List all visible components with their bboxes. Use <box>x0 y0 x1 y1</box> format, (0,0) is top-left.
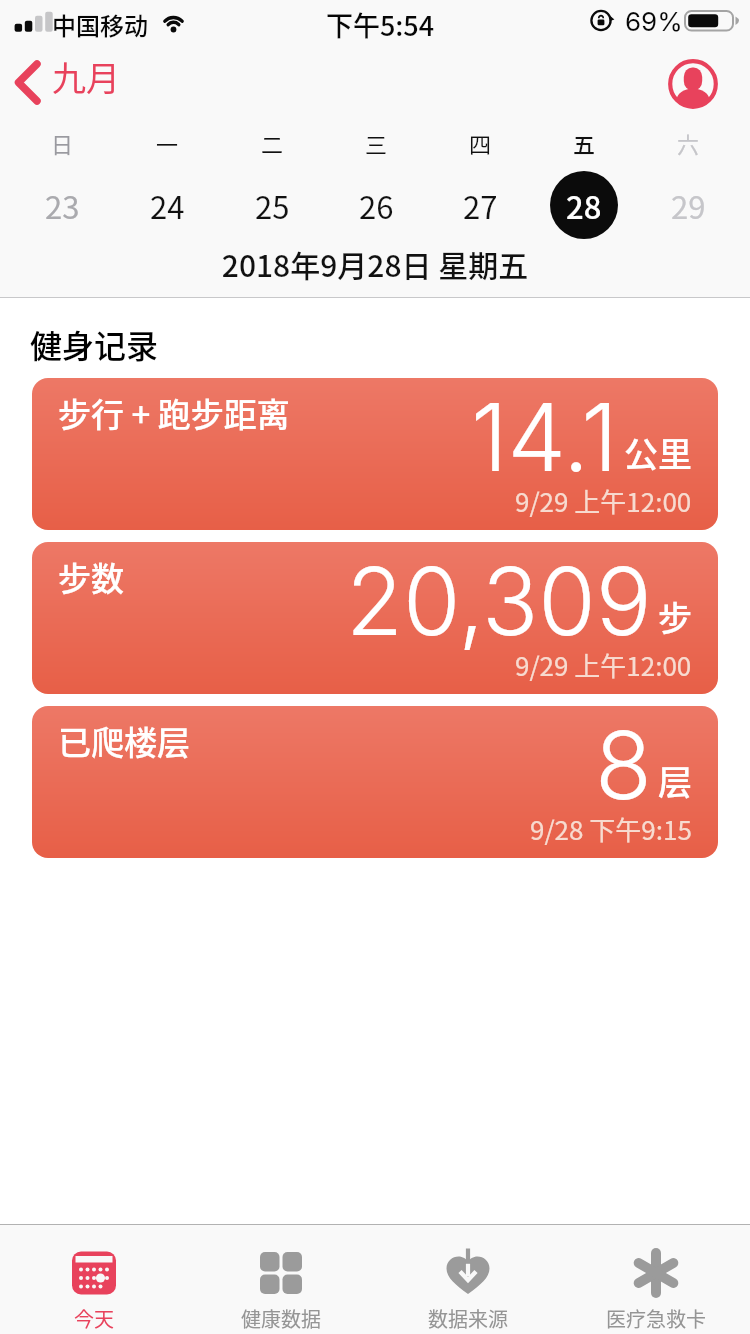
button[interactable]: 25 <box>220 171 324 239</box>
button[interactable] <box>668 59 718 109</box>
button[interactable]: 26 <box>324 171 428 239</box>
staticText: 25 <box>255 183 290 228</box>
button[interactable]: 步数 <box>32 542 718 694</box>
staticText: 9/28 下午9:15 <box>530 810 692 848</box>
staticText: 步行 + 跑步距离 <box>58 389 290 437</box>
staticText: 9/29 上午12:00 <box>515 646 692 684</box>
button[interactable]: 今天 <box>0 1225 187 1333</box>
staticText: 层 <box>658 756 692 805</box>
staticText: 一 <box>156 127 179 157</box>
staticText: 中国移动 <box>52 7 148 42</box>
staticText: 2018年9月28日 星期五 <box>0 242 750 285</box>
staticText: 健身记录 <box>30 321 159 367</box>
button[interactable]: 28 <box>532 171 636 239</box>
button[interactable]: 已爬楼层 <box>32 706 718 858</box>
staticText: 三 <box>365 127 388 157</box>
staticText: 已爬楼层 <box>58 717 190 765</box>
button[interactable]: 医疗急救卡 <box>562 1225 750 1333</box>
staticText: 四 <box>469 127 492 157</box>
button[interactable]: 数据来源 <box>374 1225 562 1333</box>
button[interactable]: 24 <box>115 171 220 239</box>
staticText: 9/29 上午12:00 <box>515 482 692 520</box>
staticText: 数据来源 <box>428 1304 508 1333</box>
staticText: 29 <box>671 183 706 228</box>
staticText: 下午5:54 <box>5 5 750 44</box>
staticText: 14.1 <box>471 381 618 494</box>
staticText: 日 <box>51 127 74 157</box>
staticText: 健康数据 <box>241 1304 321 1333</box>
staticText: 今天 <box>74 1304 114 1333</box>
button[interactable]: 23 <box>10 171 115 239</box>
staticText: 26 <box>359 183 394 228</box>
button[interactable]: 健康数据 <box>187 1225 374 1333</box>
button[interactable]: 步行 + 跑步距离 <box>32 378 718 530</box>
button[interactable]: 九月 <box>10 54 130 106</box>
staticText: 24 <box>150 183 185 228</box>
staticText: 27 <box>463 183 498 228</box>
staticText: 九月 <box>52 52 120 101</box>
staticText: 六 <box>677 127 700 157</box>
staticText: 医疗急救卡 <box>606 1304 706 1333</box>
staticText: 二 <box>261 127 284 157</box>
staticText: 五 <box>573 127 596 157</box>
staticText: 步 <box>658 592 692 641</box>
staticText: 公里 <box>624 428 692 477</box>
button[interactable]: 27 <box>428 171 532 239</box>
staticText: 步数 <box>58 553 124 601</box>
staticText: 20,309 <box>346 545 652 658</box>
staticText: 8 <box>595 709 652 822</box>
staticText: 23 <box>45 183 80 228</box>
staticText: 28 <box>566 183 602 228</box>
button[interactable]: 29 <box>636 171 740 239</box>
staticText: 69% <box>625 6 683 37</box>
